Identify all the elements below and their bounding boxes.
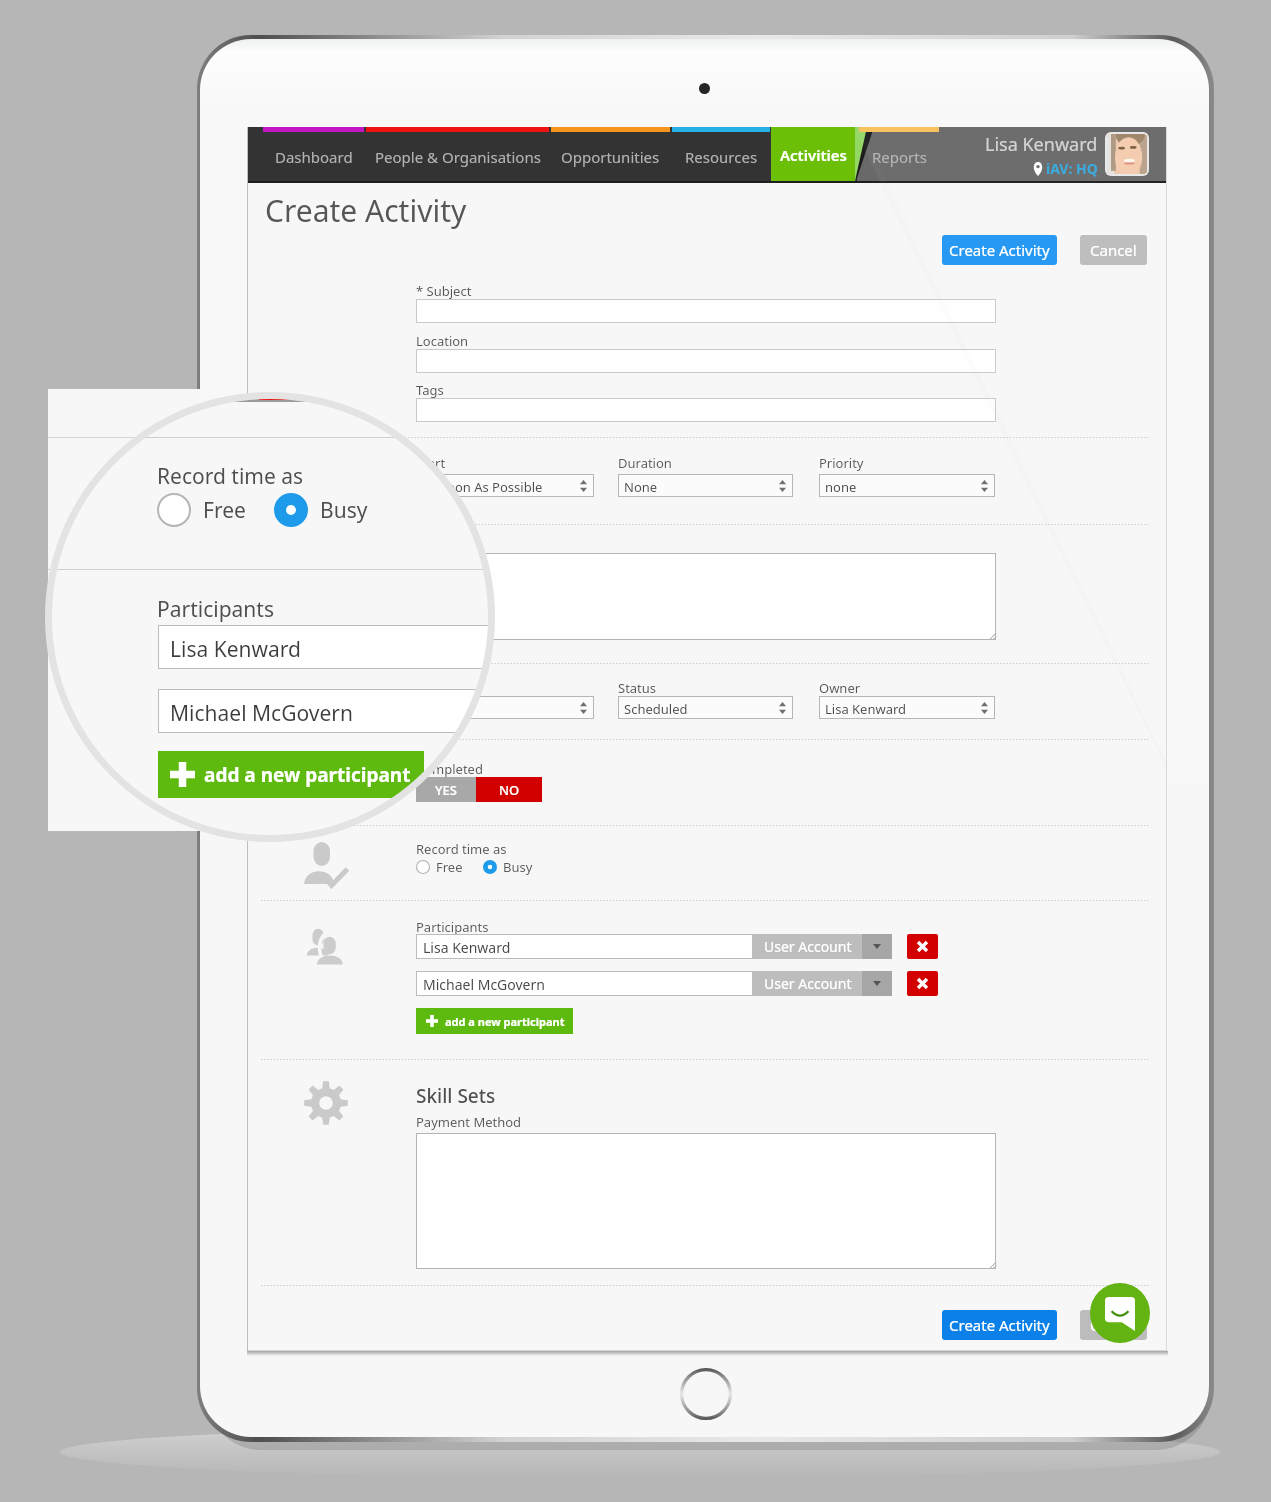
staticText: People & Organisations: [375, 147, 541, 167]
staticText: Location: [416, 332, 469, 350]
staticText: Lisa Kenward: [423, 938, 511, 957]
staticText: Michael McGovern: [170, 699, 353, 728]
staticText: iAV: HQ: [1046, 159, 1098, 178]
staticText: * Subject: [416, 282, 472, 300]
button[interactable]: Cancel: [1080, 235, 1147, 265]
button[interactable]: User Account: [753, 934, 862, 959]
button[interactable]: Cancel: [1080, 1310, 1147, 1340]
staticText: Opportunities: [561, 147, 660, 167]
staticText: Skill Sets: [416, 1083, 496, 1109]
button[interactable]: Lisa Kenward: [819, 696, 995, 719]
staticText: Start: [416, 454, 446, 472]
button[interactable]: Open chat: [1090, 1283, 1150, 1343]
staticText: As Soon As Possible: [422, 478, 543, 496]
staticText: Payment Method: [416, 1113, 522, 1131]
button[interactable]: [416, 696, 594, 719]
button[interactable]: Activities: [771, 127, 855, 181]
staticText: Activities: [780, 145, 847, 165]
staticText: Cancel: [1090, 240, 1137, 260]
staticText: Create Activity: [949, 240, 1050, 260]
staticText: Owner: [819, 679, 861, 697]
staticText: Scheduled: [624, 700, 688, 718]
button[interactable]: Create Activity: [942, 1310, 1057, 1340]
button[interactable]: YES: [416, 777, 476, 802]
staticText: Reports: [872, 147, 927, 167]
staticText: Create Activity: [265, 190, 467, 231]
button[interactable]: Opportunities: [551, 127, 670, 181]
staticText: Cancel: [1090, 1315, 1137, 1335]
staticText: none: [825, 478, 857, 496]
staticText: Lisa Kenward: [170, 635, 301, 664]
staticText: Participants: [416, 918, 489, 936]
staticText: Participants: [157, 595, 274, 624]
button[interactable]: User Account: [753, 971, 862, 996]
staticText: Dashboard: [275, 147, 353, 167]
button[interactable]: Remove participant: [907, 934, 938, 959]
button[interactable]: Resources: [672, 127, 770, 181]
staticText: Free: [436, 858, 463, 876]
staticText: None: [624, 478, 658, 496]
button[interactable]: Reports: [859, 127, 939, 181]
button[interactable]: As Soon As Possible: [416, 474, 594, 497]
staticText: YES: [435, 781, 457, 799]
staticText: Busy: [320, 496, 368, 525]
staticText: Lisa Kenward: [825, 700, 907, 718]
button[interactable]: NO: [476, 777, 542, 802]
button[interactable]: Create Activity: [942, 235, 1057, 265]
staticText: Free: [203, 496, 246, 525]
staticText: Priority: [819, 454, 864, 472]
staticText: add a new participant: [204, 762, 411, 788]
button[interactable]: none: [819, 474, 995, 497]
staticText: Create Activity: [949, 1315, 1050, 1335]
button[interactable]: Change participant type: [862, 934, 892, 959]
staticText: Michael McGovern: [423, 975, 545, 994]
button[interactable]: Change participant type: [862, 971, 892, 996]
staticText: add a new participant: [445, 1014, 565, 1029]
staticText: Tags: [416, 381, 444, 399]
staticText: User Account: [764, 937, 852, 956]
button[interactable]: add a new participant: [416, 1008, 573, 1034]
staticText: Duration: [618, 454, 672, 472]
staticText: Lisa Kenward: [985, 132, 1098, 157]
staticText: User Account: [764, 974, 852, 993]
staticText: Resources: [685, 147, 758, 167]
button[interactable]: Dashboard: [263, 127, 364, 181]
staticText: Record time as: [157, 462, 304, 491]
staticText: Record time as: [416, 840, 507, 858]
staticText: Status: [618, 679, 657, 697]
button[interactable]: add a new participant: [158, 751, 424, 798]
staticText: Completed: [416, 760, 483, 778]
button[interactable]: Scheduled: [618, 696, 793, 719]
button[interactable]: People & Organisations: [366, 127, 549, 181]
staticText: NO: [499, 781, 520, 799]
button[interactable]: None: [618, 474, 793, 497]
button[interactable]: Remove participant: [907, 971, 938, 996]
staticText: Busy: [503, 858, 533, 876]
